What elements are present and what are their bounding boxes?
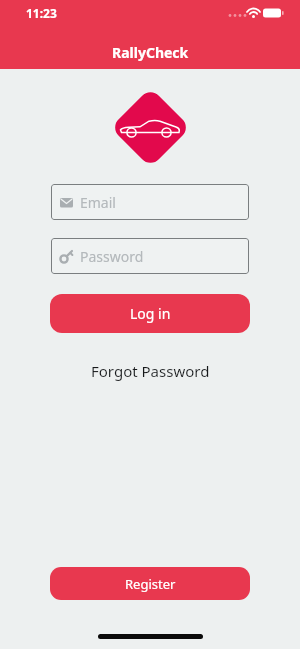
staticText: Password <box>80 247 144 266</box>
staticText: Log in <box>130 304 171 323</box>
staticText: RallyCheck <box>112 43 189 62</box>
staticText: 11:23 <box>26 5 57 21</box>
staticText: Forgot Password <box>91 361 210 381</box>
staticText: Email <box>80 193 116 212</box>
staticText: Register <box>125 575 176 593</box>
